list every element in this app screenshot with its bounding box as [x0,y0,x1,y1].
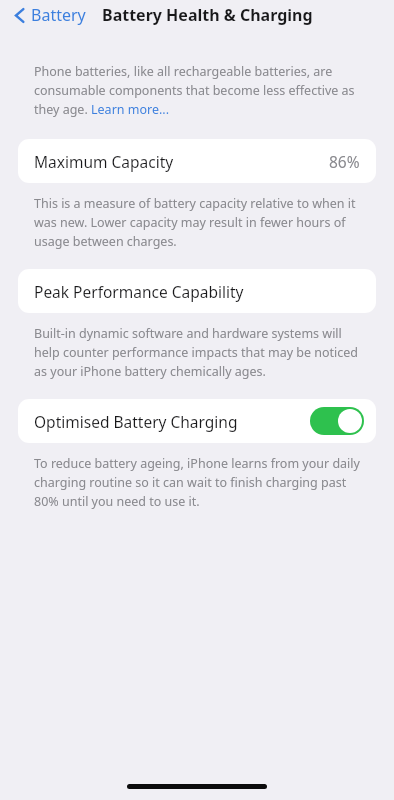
button[interactable]: Maximum Capacity [18,139,376,183]
staticText: Built-in dynamic software and hardware s… [34,325,364,380]
staticText: Phone batteries, like all rechargeable b… [34,63,364,118]
staticText: Optimised Battery Charging [34,411,238,432]
staticText: 86% [329,151,360,172]
button[interactable]: Optimised Battery Charging toggle, on [310,407,364,435]
staticText: Battery Health & Charging [102,4,313,26]
button[interactable]: Optimised Battery Charging [18,399,376,443]
button[interactable]: Peak Performance Capability [18,269,376,313]
staticText: Peak Performance Capability [34,281,244,302]
button[interactable]: Battery [10,2,90,28]
staticText: Maximum Capacity [34,151,174,172]
staticText: This is a measure of battery capacity re… [34,195,364,250]
staticText: To reduce battery ageing, iPhone learns … [34,455,364,510]
staticText: Battery [31,4,86,26]
